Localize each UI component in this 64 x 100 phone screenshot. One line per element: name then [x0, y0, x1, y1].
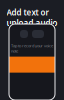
button[interactable]: Microphone	[32, 30, 44, 38]
staticText: Record or type your notes	[10, 30, 54, 35]
staticText: Tap to record your voice note	[11, 43, 53, 54]
button[interactable]: Camera	[20, 30, 28, 38]
staticText: Add text or upload audio	[6, 7, 57, 28]
